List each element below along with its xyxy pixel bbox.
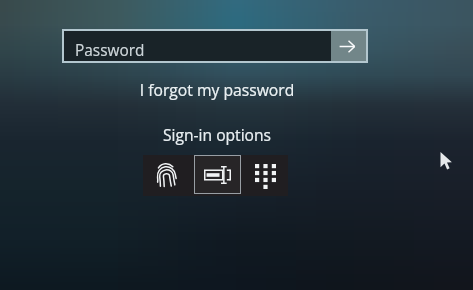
button[interactable]: I forgot my password <box>64 79 370 100</box>
button[interactable]: Sign in with PIN <box>243 155 288 196</box>
button[interactable]: Sign in with password <box>194 155 241 194</box>
staticText: Sign-in options <box>64 124 370 145</box>
staticText: Password <box>75 40 145 61</box>
button[interactable]: Sign in with fingerprint <box>143 155 191 196</box>
button[interactable]: Submit password <box>331 31 366 61</box>
button[interactable]: Password <box>64 31 366 61</box>
